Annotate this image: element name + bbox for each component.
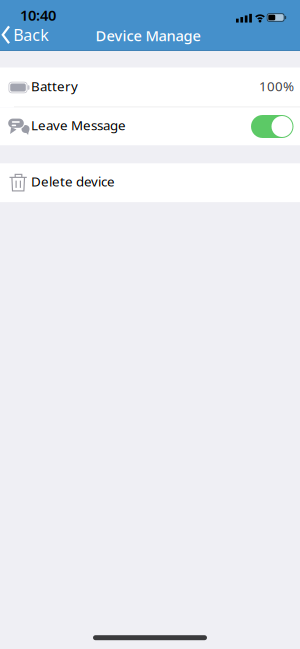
staticText: Back	[13, 24, 49, 45]
button[interactable]: Delete device	[0, 163, 300, 202]
staticText: 10:40	[20, 5, 56, 25]
staticText: 100%	[259, 77, 294, 95]
staticText: Delete device	[31, 172, 115, 190]
staticText: Battery	[31, 77, 78, 95]
staticText: Leave Message	[31, 116, 126, 134]
button[interactable]	[251, 115, 293, 138]
button[interactable]: Back	[1, 24, 49, 45]
staticText: Device Manage	[95, 26, 200, 45]
